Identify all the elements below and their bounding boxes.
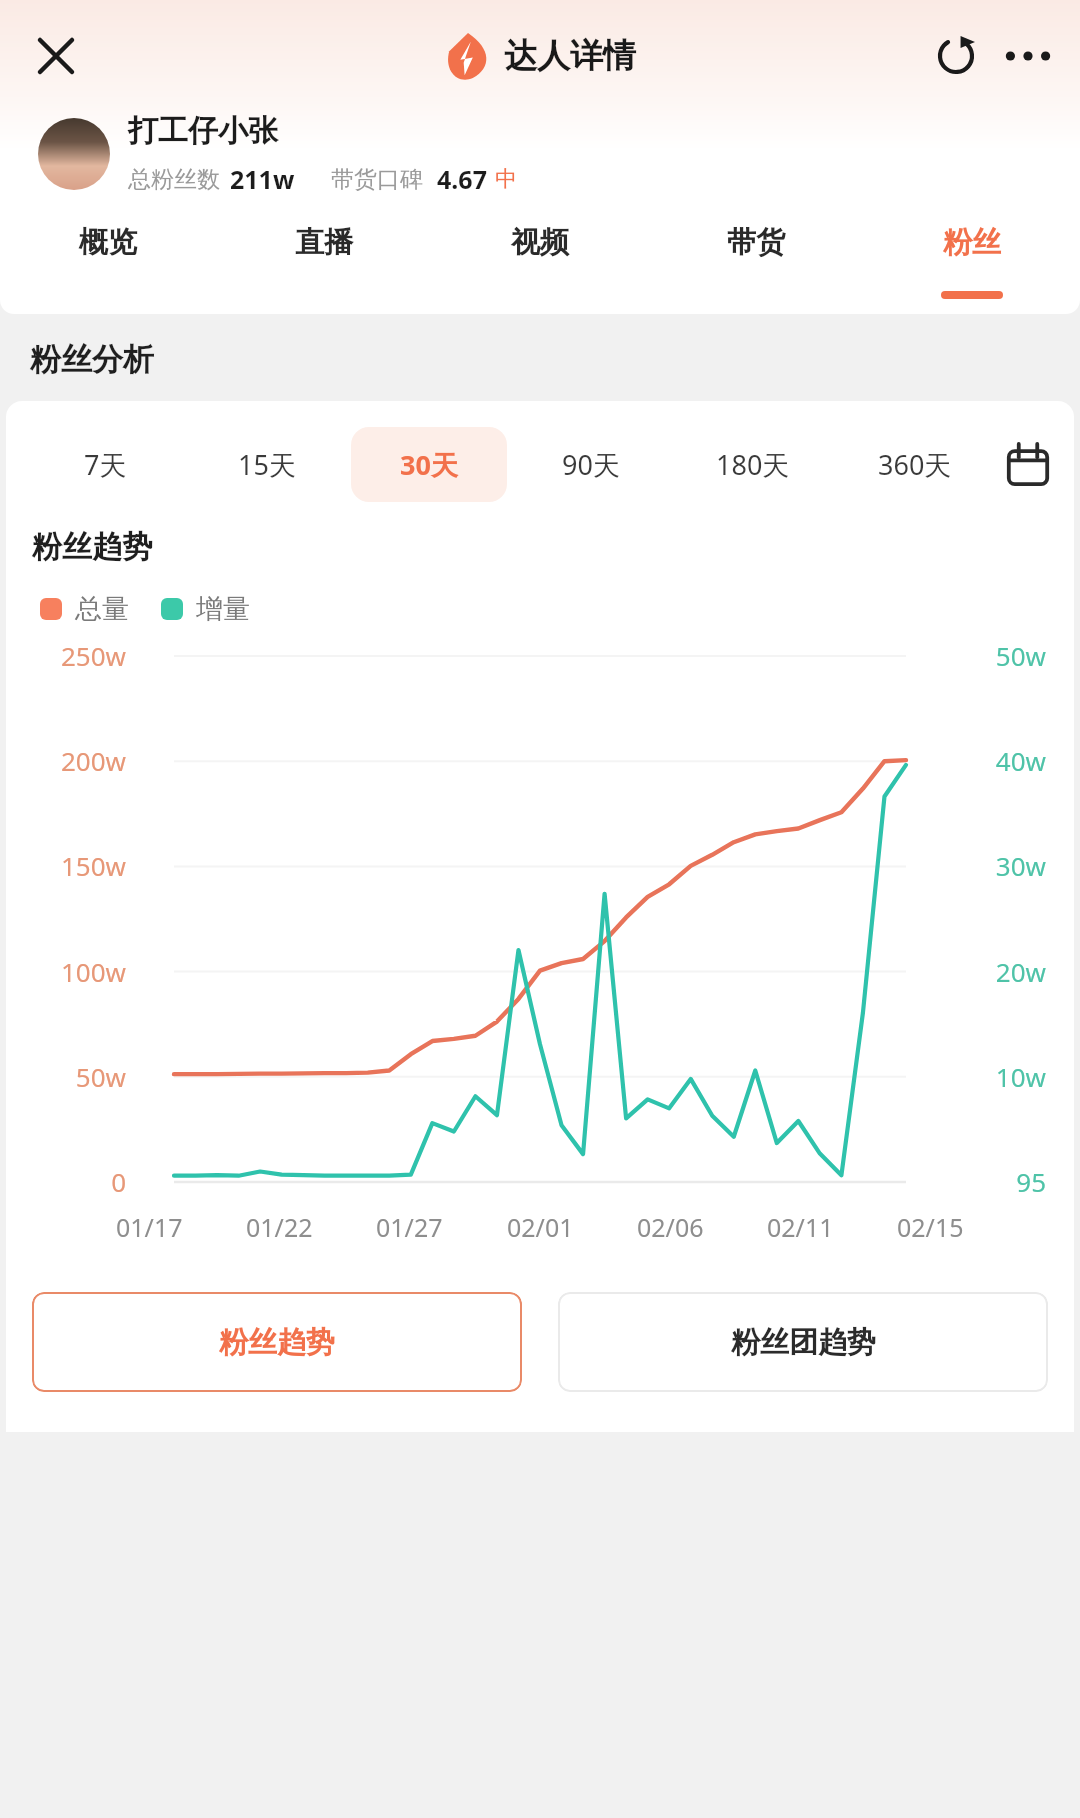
staticText: 带货 bbox=[727, 224, 785, 261]
staticText: 01/17 bbox=[116, 1210, 183, 1244]
button[interactable]: 带货 bbox=[648, 216, 864, 314]
staticText: 4.67 bbox=[437, 162, 487, 196]
staticText: 直播 bbox=[295, 224, 353, 261]
button[interactable]: 180天 bbox=[675, 427, 831, 502]
staticText: 02/11 bbox=[767, 1210, 834, 1244]
staticText: 打工仔小张 bbox=[128, 112, 278, 150]
button[interactable]: 视频 bbox=[432, 216, 648, 314]
staticText: 增量 bbox=[196, 592, 250, 626]
staticText: 10w bbox=[6, 1059, 1046, 1094]
staticText: 15天 bbox=[238, 446, 296, 483]
staticText: 360天 bbox=[878, 446, 952, 483]
button[interactable]: 7天 bbox=[27, 427, 183, 502]
staticText: 中 bbox=[495, 165, 517, 193]
staticText: 02/01 bbox=[507, 1210, 574, 1244]
staticText: 达人详情 bbox=[504, 35, 636, 77]
staticText: 01/22 bbox=[246, 1210, 313, 1244]
staticText: 粉丝团趋势 bbox=[731, 1324, 876, 1361]
button[interactable]: 粉丝 bbox=[864, 216, 1080, 314]
staticText: 粉丝分析 bbox=[30, 340, 154, 379]
staticText: 粉丝趋势 bbox=[219, 1324, 335, 1361]
button[interactable]: Pick date range bbox=[996, 433, 1060, 497]
staticText: 100w bbox=[14, 954, 126, 989]
staticText: 50w bbox=[6, 638, 1046, 673]
staticText: 视频 bbox=[511, 224, 569, 261]
staticText: 02/15 bbox=[897, 1210, 964, 1244]
button[interactable]: More options bbox=[996, 24, 1060, 88]
button[interactable]: 360天 bbox=[837, 427, 993, 502]
staticText: 200w bbox=[14, 743, 126, 778]
staticText: 概览 bbox=[79, 224, 137, 261]
staticText: 20w bbox=[6, 954, 1046, 989]
staticText: 7天 bbox=[84, 446, 127, 483]
button[interactable]: 概览 bbox=[0, 216, 216, 314]
staticText: 01/27 bbox=[376, 1210, 443, 1244]
staticText: 总粉丝数 bbox=[128, 165, 220, 194]
staticText: 0 bbox=[14, 1164, 126, 1199]
staticText: 90天 bbox=[562, 446, 620, 483]
staticText: 250w bbox=[14, 638, 126, 673]
staticText: 粉丝趋势 bbox=[32, 528, 152, 566]
button[interactable]: 粉丝团趋势 bbox=[558, 1292, 1048, 1392]
staticText: 95 bbox=[6, 1164, 1046, 1199]
button[interactable]: 30天 bbox=[351, 427, 507, 502]
button[interactable]: 90天 bbox=[513, 427, 669, 502]
button[interactable]: Close bbox=[24, 24, 88, 88]
staticText: 40w bbox=[6, 743, 1046, 778]
staticText: 30天 bbox=[400, 446, 458, 483]
staticText: 总量 bbox=[75, 592, 129, 626]
staticText: 211w bbox=[230, 162, 295, 196]
staticText: 50w bbox=[14, 1059, 126, 1094]
staticText: 粉丝 bbox=[943, 224, 1001, 261]
button[interactable]: 直播 bbox=[216, 216, 432, 314]
button[interactable]: Refresh bbox=[924, 24, 988, 88]
button[interactable]: 粉丝趋势 bbox=[32, 1292, 522, 1392]
staticText: 150w bbox=[14, 848, 126, 883]
staticText: 02/06 bbox=[637, 1210, 704, 1244]
staticText: 带货口碑 bbox=[331, 165, 423, 194]
button[interactable]: 15天 bbox=[189, 427, 345, 502]
staticText: 180天 bbox=[716, 446, 790, 483]
staticText: 30w bbox=[6, 848, 1046, 883]
